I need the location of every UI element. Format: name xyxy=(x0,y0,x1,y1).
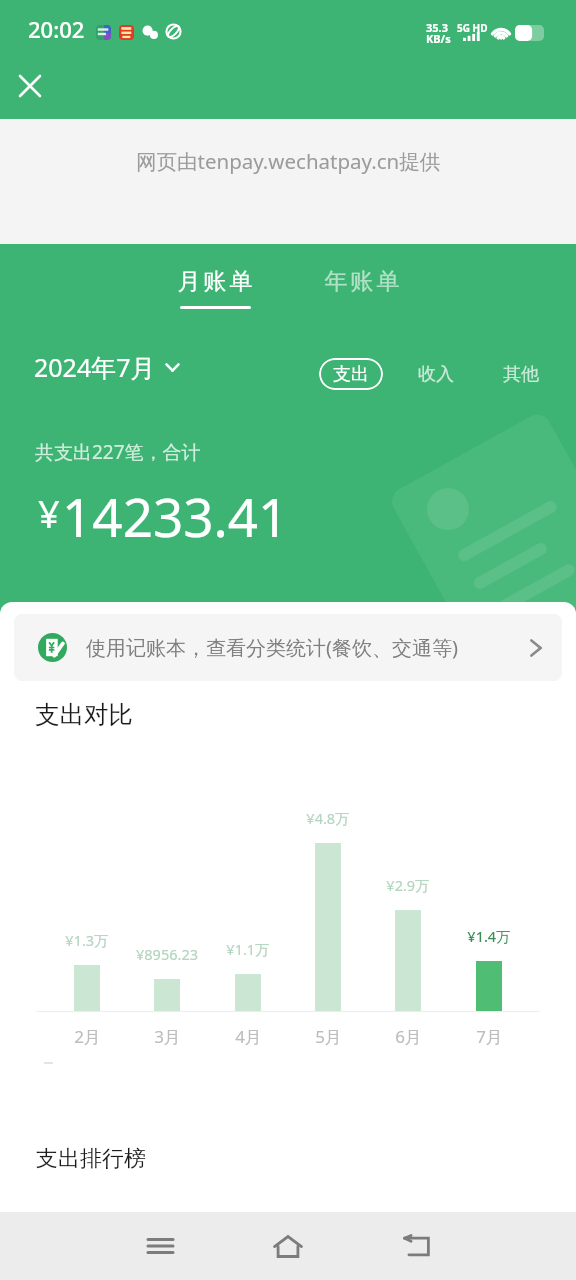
button[interactable]: Close xyxy=(10,66,50,106)
staticText: 7月 xyxy=(476,1025,503,1048)
staticText: 收入 xyxy=(418,363,454,386)
staticText: ¥1.1万 xyxy=(226,939,270,959)
staticText: 2024年7月 xyxy=(34,350,156,384)
button[interactable]: Recents xyxy=(112,1212,208,1280)
button[interactable]: 月账单 xyxy=(174,265,256,311)
staticText: 使用记账本，查看分类统计(餐饮、交通等) xyxy=(86,634,458,661)
staticText: ¥ xyxy=(38,487,60,539)
button[interactable]: 收入 xyxy=(414,358,458,390)
staticText: 2月 xyxy=(74,1025,101,1048)
staticText: 月账单 xyxy=(176,267,254,296)
button[interactable]: 2024年7月 xyxy=(34,350,180,384)
button[interactable]: 使用记账本，查看分类统计(餐饮、交通等) xyxy=(14,614,562,681)
staticText: KB/s xyxy=(426,31,451,46)
staticText: 5月 xyxy=(315,1025,342,1048)
button[interactable]: Back xyxy=(368,1212,464,1280)
staticText: 4月 xyxy=(235,1025,262,1048)
staticText: 支出 xyxy=(333,363,369,386)
staticText: 年账单 xyxy=(323,267,401,296)
staticText: ¥2.9万 xyxy=(386,875,430,895)
button[interactable]: Home xyxy=(240,1212,336,1280)
button[interactable]: 其他 xyxy=(499,358,543,390)
staticText: ¥4.8万 xyxy=(306,808,350,828)
staticText: 14233.41 xyxy=(62,480,289,552)
staticText: 其他 xyxy=(503,363,539,386)
staticText: ¥1.4万 xyxy=(467,926,511,946)
staticText: 支出排行榜 xyxy=(36,1145,146,1173)
staticText: 6月 xyxy=(395,1025,422,1048)
staticText: 35.3 xyxy=(426,20,448,35)
staticText: 3月 xyxy=(154,1025,181,1048)
staticText: 20:02 xyxy=(28,14,85,44)
staticText: ¥1.3万 xyxy=(65,930,109,950)
staticText: 5G HD xyxy=(457,21,488,35)
button[interactable]: 年账单 xyxy=(321,265,403,308)
staticText: 网页由tenpay.wechatpay.cn提供 xyxy=(136,147,441,175)
staticText: 共支出227笔，合计 xyxy=(35,439,201,465)
button[interactable]: 支出 xyxy=(319,358,383,390)
staticText: 支出对比 xyxy=(35,699,133,730)
staticText: ¥8956.23 xyxy=(136,944,198,964)
